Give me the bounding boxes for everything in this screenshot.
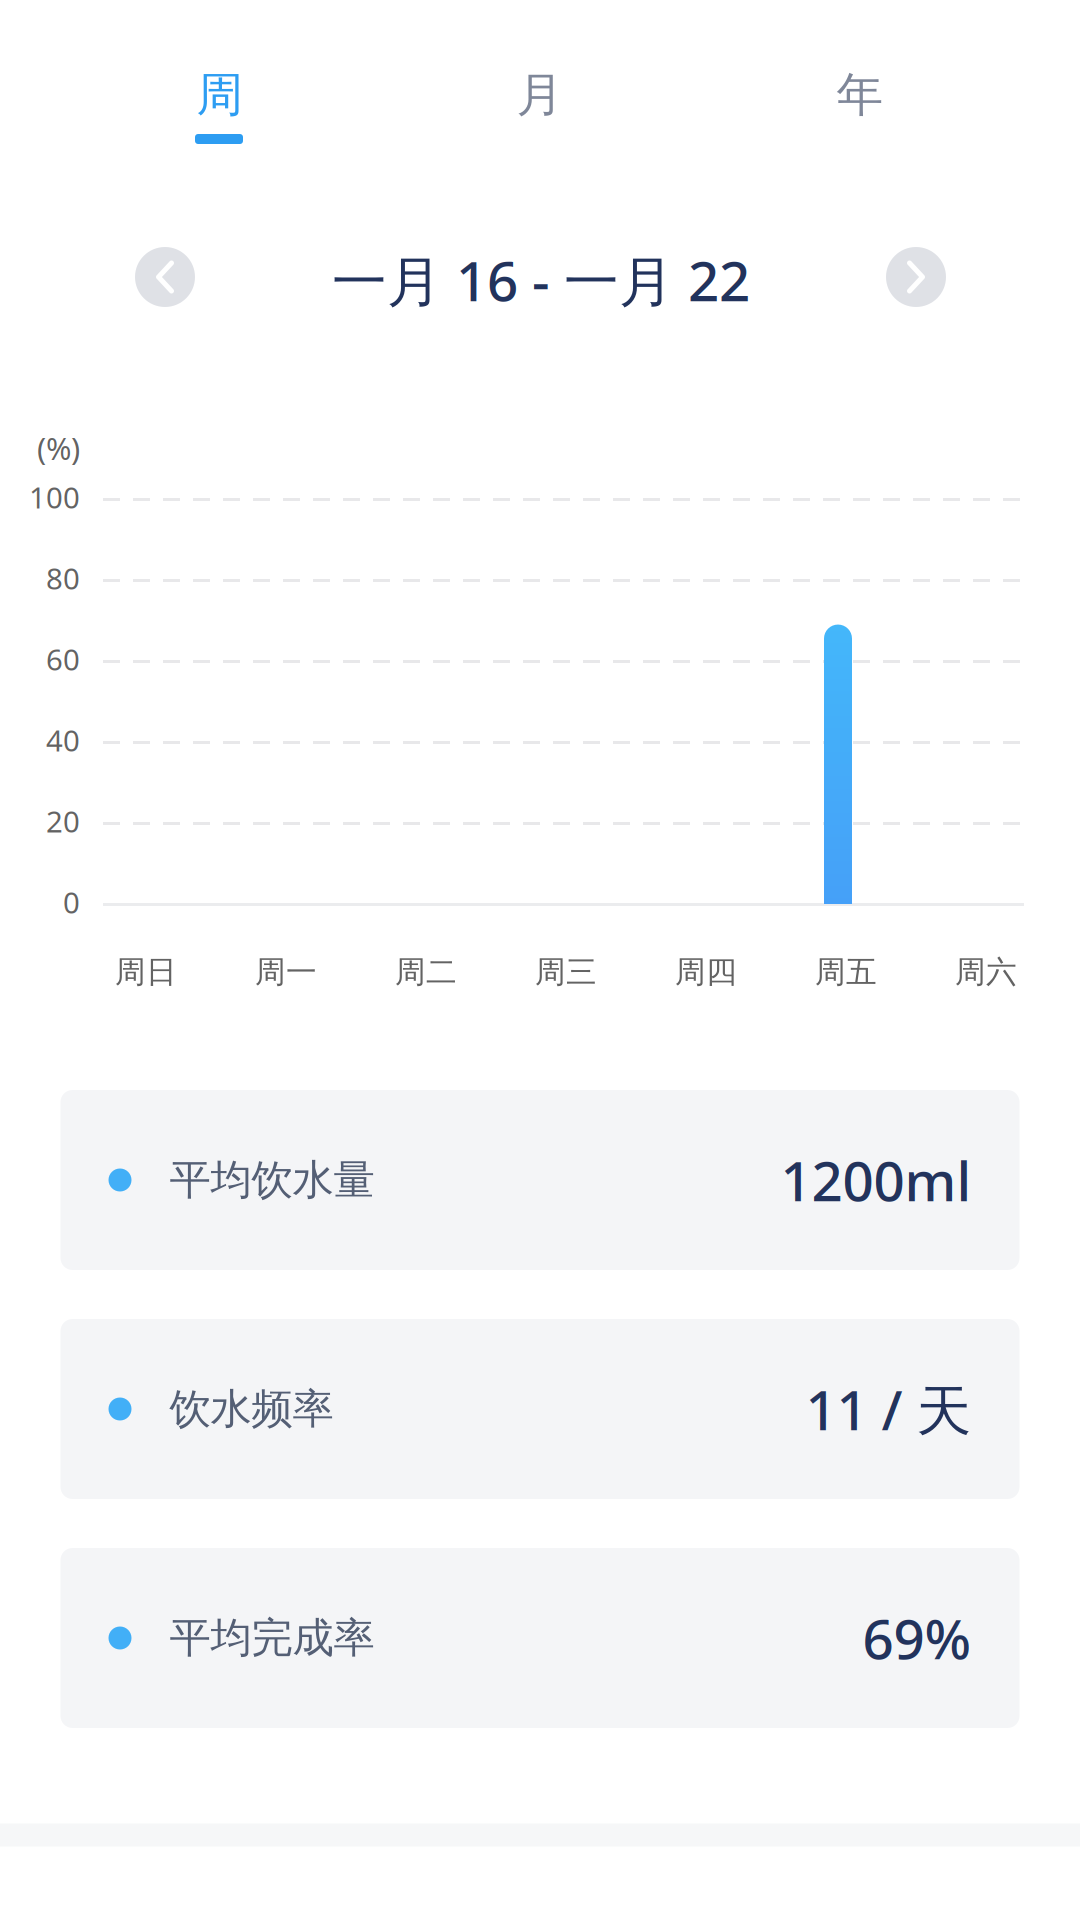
staticText: 69% [862,1602,971,1674]
button[interactable]: Next week [886,247,946,307]
staticText: 周日 [115,953,177,991]
staticText: 周一 [255,953,317,991]
staticText: 80 [46,558,80,597]
button[interactable]: 周 [60,30,380,190]
staticText: 年 [836,66,883,124]
button[interactable]: 平均完成率 [60,1548,1019,1728]
staticText: 周 [196,66,243,124]
button[interactable]: Previous week [135,247,195,307]
staticText: 40 [46,720,80,759]
staticText: 1200ml [780,1144,971,1216]
staticText: 周四 [675,953,737,991]
button[interactable]: 年 [700,30,1020,190]
staticText: 周六 [955,953,1017,991]
staticText: 平均饮水量 [169,1155,374,1205]
staticText: (%) [37,428,80,468]
staticText: 月 [516,66,563,124]
staticText: 100 [29,477,80,516]
staticText: 60 [46,639,80,678]
staticText: 周五 [815,953,877,991]
staticText: 平均完成率 [169,1613,374,1663]
staticText: 0 [63,882,80,921]
button[interactable]: 饮水频率 [60,1319,1019,1499]
staticText: 11 / 天 [805,1373,971,1445]
staticText: 20 [46,801,80,840]
staticText: 周三 [535,953,597,991]
button[interactable]: 平均饮水量 [60,1090,1019,1270]
button[interactable]: 月 [380,30,700,190]
staticText: 一月 16 - 一月 22 [332,244,750,316]
staticText: 周二 [395,953,457,991]
staticText: 饮水频率 [169,1384,333,1434]
